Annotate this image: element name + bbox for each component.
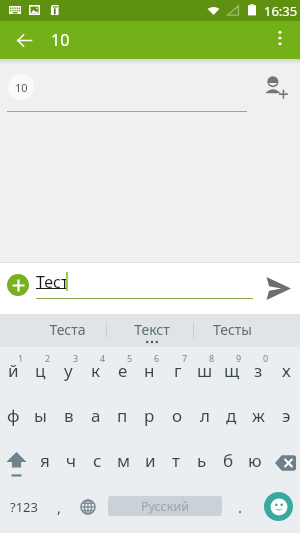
button[interactable]: г [164,349,191,394]
staticText: Теста [49,320,86,339]
button[interactable]: ?123 [2,484,46,529]
staticText: е [118,359,128,382]
button[interactable]: Русский [108,496,222,516]
staticText: р [144,404,155,427]
staticText: х [282,359,291,382]
staticText: 10 [15,80,28,95]
button[interactable]: в [55,394,82,439]
staticText: э [282,404,291,427]
staticText: 10 [51,29,70,51]
button[interactable]: т [163,439,189,484]
staticText: . [238,497,243,517]
button[interactable]: Add attachment [7,274,29,296]
button[interactable]: щ [218,349,245,394]
staticText: 3 [73,352,79,364]
staticText: 0 [263,352,269,364]
button[interactable]: р [136,394,163,439]
button[interactable]: Back [6,22,42,58]
button[interactable]: ц [27,349,54,394]
staticText: у [64,359,73,382]
button[interactable]: Send [261,272,294,305]
button[interactable]: д [218,394,245,439]
button[interactable]: у [55,349,82,394]
button[interactable]: е [109,349,136,394]
button[interactable]: Shift [0,439,32,484]
button[interactable]: я [32,439,58,484]
button[interactable]: Backspace [268,439,300,484]
button[interactable]: ы [27,394,54,439]
staticText: ц [35,359,46,382]
staticText: 2 [45,352,51,364]
button[interactable]: п [109,394,136,439]
staticText: з [254,359,263,382]
button[interactable]: ч [58,439,84,484]
staticText: п [117,404,128,427]
staticText: щ [224,359,240,382]
staticText: 7 [182,352,188,364]
staticText: н [144,359,155,382]
staticText: ч [66,449,77,472]
staticText: ю [248,449,262,472]
staticText: 9 [236,352,242,364]
button[interactable]: Тесты [192,314,272,347]
button[interactable]: й [0,349,27,394]
staticText: а [91,404,101,427]
staticText: 8 [209,352,215,364]
staticText: л [200,404,210,427]
button[interactable]: ш [191,349,218,394]
staticText: г [174,359,182,382]
button[interactable]: Add contact [260,71,291,102]
staticText: м [117,449,131,472]
staticText: я [40,449,50,472]
button[interactable]: а [82,394,109,439]
staticText: Тест [36,271,69,291]
staticText: д [226,404,237,427]
staticText: ф [7,404,20,427]
button[interactable]: 10 [8,74,34,100]
button[interactable]: м [111,439,137,484]
staticText: Русский [141,498,189,515]
button[interactable]: и [137,439,163,484]
button[interactable]: Теста [27,314,107,347]
staticText: и [145,449,156,472]
staticText: в [64,404,74,427]
button[interactable]: х [273,349,300,394]
button[interactable]: ф [0,394,27,439]
staticText: Текст [134,320,170,339]
staticText: ш [197,359,213,382]
button[interactable]: э [273,394,300,439]
staticText: б [223,449,234,472]
button[interactable]: More options [264,22,296,54]
button[interactable]: к [82,349,109,394]
staticText: 5 [127,352,133,364]
staticText: 1 [18,352,24,364]
staticText: ?123 [10,498,38,516]
button[interactable]: Emoji [256,484,300,529]
button[interactable]: о [164,394,191,439]
staticText: ы [34,404,47,427]
staticText: с [93,449,102,472]
staticText: Тесты [213,320,252,339]
staticText: т [172,449,180,472]
button[interactable]: Change language [74,484,102,529]
button[interactable]: . [228,484,252,529]
staticText: 6 [154,352,160,364]
button[interactable]: л [191,394,218,439]
button[interactable]: , [46,484,72,529]
staticText: ь [197,449,207,472]
staticText: , [57,497,62,517]
staticText: 4 [100,352,106,364]
button[interactable]: ж [245,394,272,439]
button[interactable]: Текст [112,314,192,347]
button[interactable]: н [136,349,163,394]
staticText: к [91,359,101,382]
button[interactable]: б [215,439,241,484]
button[interactable]: ь [189,439,215,484]
staticText: о [172,404,183,427]
staticText: ж [252,404,265,427]
staticText: 16:35 [264,2,298,20]
button[interactable]: ю [242,439,268,484]
button[interactable]: с [84,439,110,484]
staticText: й [8,359,19,382]
button[interactable]: з [245,349,272,394]
